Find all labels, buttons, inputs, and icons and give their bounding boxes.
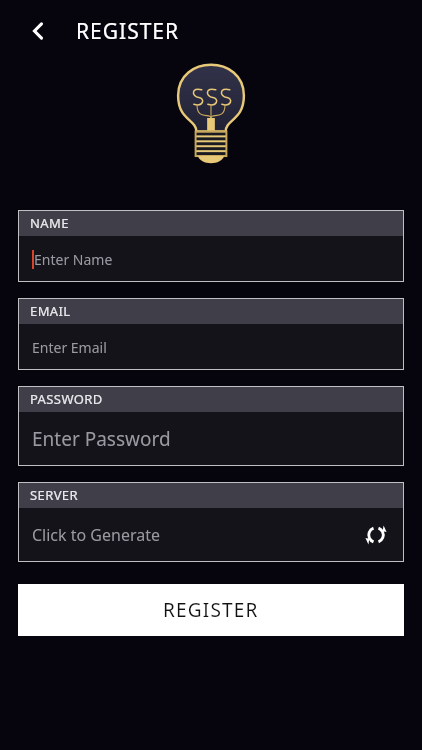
staticText: SERVER bbox=[30, 486, 78, 504]
staticText: EMAIL bbox=[30, 302, 71, 320]
button[interactable]: PASSWORD bbox=[18, 386, 404, 466]
staticText: PASSWORD bbox=[30, 390, 103, 408]
staticText: Click to Generate bbox=[32, 524, 161, 546]
button[interactable]: SERVER bbox=[18, 482, 404, 562]
button[interactable]: EMAIL bbox=[18, 298, 404, 370]
staticText: Enter Email bbox=[32, 338, 107, 357]
button[interactable]: NAME bbox=[18, 210, 404, 282]
staticText: Enter Password bbox=[32, 426, 171, 452]
button[interactable]: REGISTER bbox=[18, 584, 404, 636]
staticText: REGISTER bbox=[163, 597, 259, 623]
staticText: NAME bbox=[30, 214, 69, 232]
button[interactable]: Generate server bbox=[362, 521, 390, 549]
staticText: Enter Name bbox=[34, 250, 113, 269]
button[interactable]: Back bbox=[18, 11, 58, 51]
staticText: REGISTER bbox=[76, 17, 180, 46]
